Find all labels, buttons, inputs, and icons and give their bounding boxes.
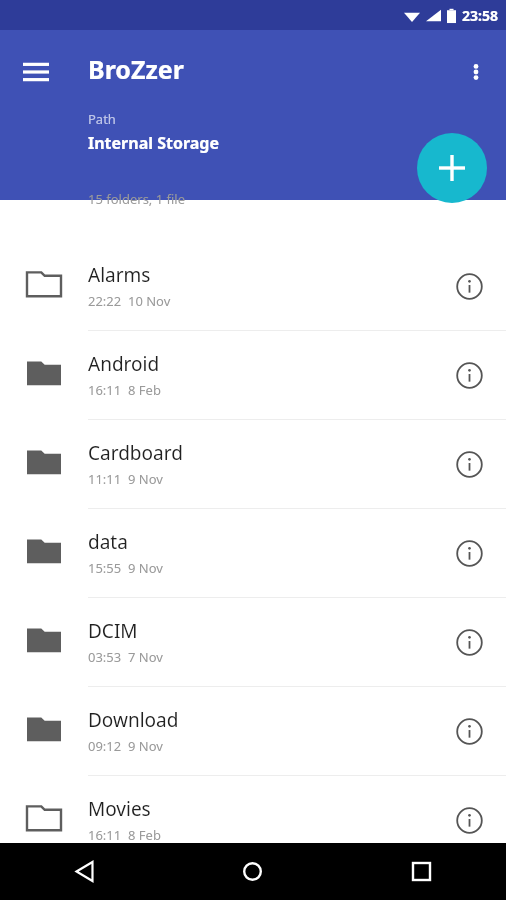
button[interactable]: Add [417,133,487,203]
staticText: DCIM [88,618,138,644]
button[interactable]: Open navigation drawer [12,48,60,96]
staticText: 16:11 8 Feb [88,381,161,399]
staticText: Path [88,110,116,128]
button[interactable]: Cardboard [0,420,506,508]
staticText: Cardboard [88,440,183,466]
button[interactable]: Movies [0,776,506,864]
button[interactable]: Details for Android [432,331,506,419]
staticText: Download [88,707,179,733]
button[interactable]: Details for data [432,509,506,597]
button[interactable]: Back [0,843,168,900]
button[interactable]: data [0,509,506,597]
staticText: Android [88,351,160,377]
button[interactable]: Details for DCIM [432,598,506,686]
button[interactable]: Home [168,843,337,900]
staticText: data [88,529,128,555]
button[interactable]: Download [0,687,506,775]
staticText: 09:12 9 Nov [88,737,163,755]
button[interactable]: Recent apps [337,843,506,900]
button[interactable]: DCIM [0,598,506,686]
staticText: 22:22 10 Nov [88,292,171,310]
button[interactable]: Android [0,331,506,419]
button[interactable]: Details for Cardboard [432,420,506,508]
button[interactable]: Details for Movies [432,776,506,864]
button[interactable]: Alarms [0,242,506,330]
button[interactable]: More options [452,48,500,96]
staticText: Internal Storage [88,132,220,154]
staticText: Movies [88,796,151,822]
staticText: 03:53 7 Nov [88,648,163,666]
staticText: 23:58 [462,6,498,25]
staticText: 15 folders, 1 file [88,190,186,208]
staticText: Alarms [88,262,151,288]
button[interactable]: Details for Alarms [432,242,506,330]
staticText: BroZzer [88,52,184,86]
button[interactable]: Details for Download [432,687,506,775]
staticText: 15:55 9 Nov [88,559,163,577]
staticText: 11:11 9 Nov [88,470,163,488]
staticText: 16:11 8 Feb [88,826,161,844]
